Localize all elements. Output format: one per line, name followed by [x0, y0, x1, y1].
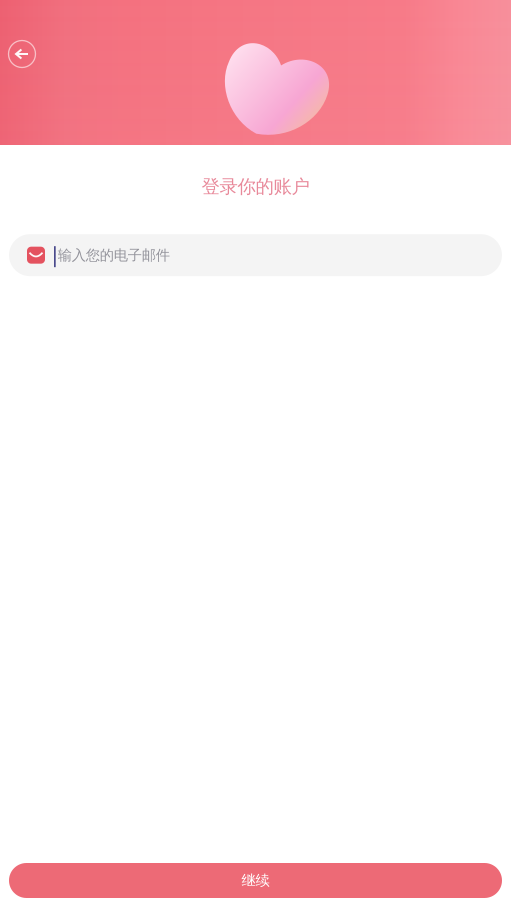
staticText: 继续: [241, 871, 269, 889]
staticText: 输入您的电子邮件: [58, 246, 170, 264]
button[interactable]: 继续: [9, 863, 502, 898]
button[interactable]: Back: [0, 32, 44, 76]
staticText: 登录你的账户: [201, 175, 309, 198]
